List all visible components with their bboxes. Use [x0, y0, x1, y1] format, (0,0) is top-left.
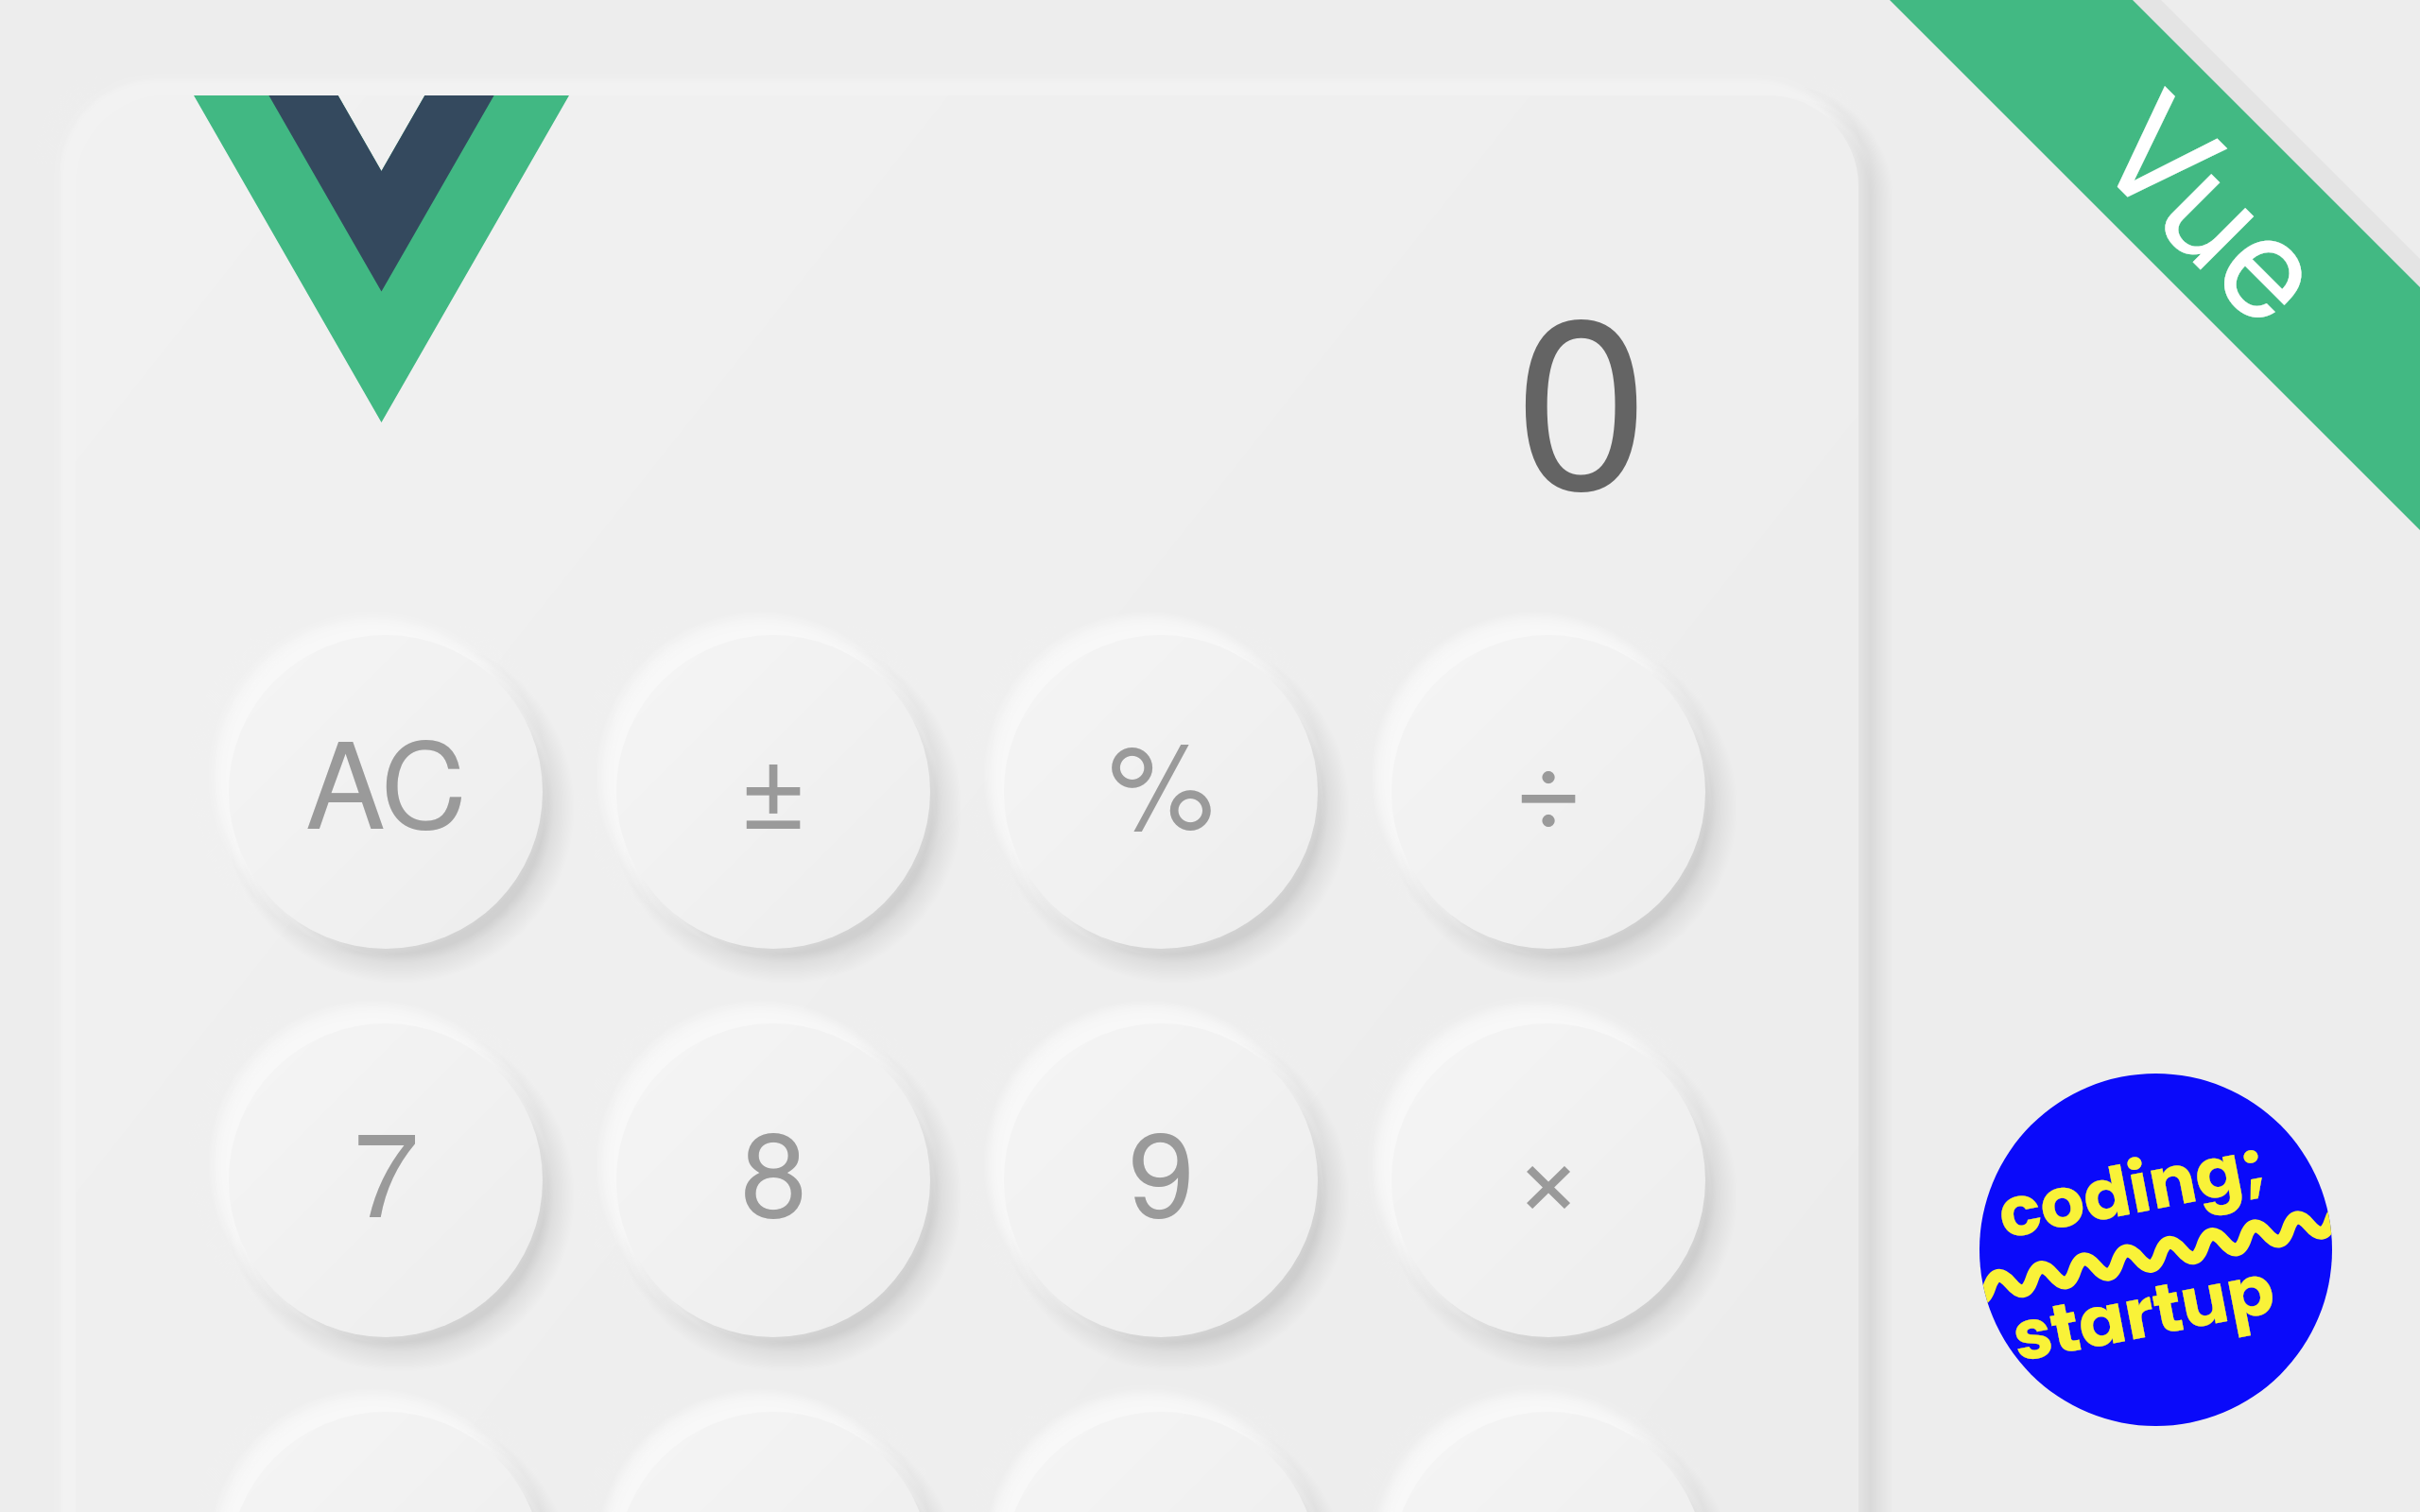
staticText: % [1108, 692, 1215, 862]
button[interactable]: Percent [1004, 635, 1318, 949]
button[interactable]: Subtract [1391, 1412, 1705, 1512]
staticText: 0 [1515, 215, 1649, 536]
staticText: coding; [1990, 1116, 2274, 1262]
staticText: ± [738, 692, 808, 862]
button[interactable]: Built with Vue [1971, 0, 2420, 450]
staticText: ÷ [1513, 692, 1583, 862]
button[interactable]: 8 [616, 1023, 930, 1337]
button[interactable]: Multiply [1391, 1023, 1705, 1337]
staticText: 9 [1128, 1080, 1195, 1250]
staticText: AC [305, 692, 467, 862]
staticText: 8 [740, 1080, 807, 1250]
button[interactable]: coding; startup [1979, 1074, 2332, 1426]
staticText: 7 [353, 1080, 420, 1250]
button[interactable]: 6 [1004, 1412, 1318, 1512]
button[interactable]: 9 [1004, 1023, 1318, 1337]
staticText: Vue [2070, 41, 2381, 351]
button[interactable]: Divide [1391, 635, 1705, 949]
button[interactable]: 7 [229, 1023, 543, 1337]
button[interactable]: Plus minus [616, 635, 930, 949]
staticText: × [1513, 1080, 1583, 1250]
staticText: startup [2004, 1240, 2282, 1385]
button[interactable]: All clear [229, 635, 543, 949]
